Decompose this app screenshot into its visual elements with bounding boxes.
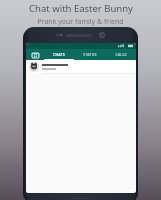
staticText: CALLS bbox=[115, 52, 127, 57]
button[interactable] bbox=[26, 60, 136, 74]
staticText: Chat with Easter Bunny bbox=[29, 2, 133, 15]
button[interactable]: Camera bbox=[26, 49, 44, 60]
staticText: CHATS bbox=[53, 52, 65, 57]
button[interactable]: CALLS bbox=[105, 49, 136, 60]
staticText: Prank your family & friend bbox=[37, 17, 124, 27]
button[interactable]: STATUS bbox=[74, 49, 105, 60]
staticText: STATUS bbox=[83, 52, 97, 57]
button[interactable]: CHATS bbox=[44, 49, 74, 60]
